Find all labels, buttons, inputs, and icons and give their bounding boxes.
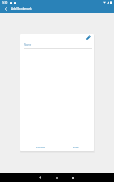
button[interactable]: Edit [84, 34, 93, 42]
staticText: Add Bookmark [11, 7, 32, 11]
staticText: Name [24, 43, 32, 47]
button[interactable]: Back [36, 173, 44, 182]
button[interactable]: Home [53, 173, 61, 182]
staticText: SAVE [73, 145, 79, 148]
button[interactable]: SAVE [69, 142, 83, 150]
staticText: CANCEL [36, 145, 46, 148]
button[interactable]: Navigate up [0, 5, 11, 13]
staticText: 9:30 [2, 1, 8, 5]
button[interactable]: Recent apps [69, 173, 77, 182]
button[interactable]: CANCEL [33, 142, 49, 150]
